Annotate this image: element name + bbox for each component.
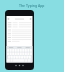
staticText: The Typing App	[19, 3, 45, 8]
